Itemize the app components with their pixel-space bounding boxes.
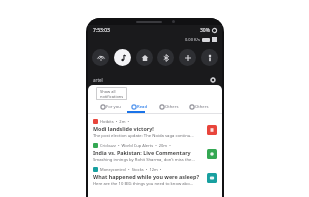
- button[interactable]: Wi-Fi: [92, 49, 109, 66]
- button[interactable]: Others: [189, 104, 210, 110]
- button[interactable]: Flashlight: [201, 49, 218, 66]
- staticText: Here are the 10 BIG things you need to k…: [93, 181, 194, 187]
- staticText: 0.00 K/s: [185, 37, 200, 42]
- staticText: artel: [93, 77, 103, 83]
- button[interactable]: For you: [100, 104, 122, 110]
- staticText: Show all: [100, 89, 116, 94]
- staticText: Others: [165, 104, 179, 110]
- button[interactable]: Hotbits • 2m •: [88, 117, 222, 141]
- staticText: Hotbits • 2m •: [100, 119, 129, 124]
- staticText: What happened while you were asleep?: [93, 173, 200, 180]
- staticText: 7:53:03: [93, 27, 110, 34]
- staticText: Others: [195, 104, 209, 110]
- staticText: Smashing innings by Rohit Sharma, don't …: [93, 157, 195, 163]
- button[interactable]: Home: [136, 49, 153, 66]
- staticText: Read: [137, 104, 148, 110]
- button[interactable]: Sound: [114, 49, 131, 66]
- staticText: The post election update: The Noida saga…: [93, 133, 194, 139]
- button[interactable]: Moneycontrol • Stocks • 12m •: [88, 165, 222, 189]
- staticText: 30%: [200, 27, 210, 34]
- button[interactable]: Cricbuzz • World Cup Alerts • 20m •: [88, 141, 222, 165]
- staticText: Modi landslide victory!: [93, 125, 154, 132]
- staticText: Cricbuzz • World Cup Alerts • 20m •: [100, 143, 171, 148]
- button[interactable]: Show all: [96, 87, 127, 100]
- button[interactable]: Read: [131, 104, 149, 110]
- button[interactable]: Bluetooth: [157, 49, 174, 66]
- button[interactable]: Settings: [209, 76, 217, 84]
- button[interactable]: Add: [179, 49, 196, 66]
- staticText: Moneycontrol • Stocks • 12m •: [100, 167, 162, 172]
- staticText: India vs. Pakistan: Live Commentary: [93, 149, 191, 156]
- staticText: For you: [106, 104, 121, 110]
- button[interactable]: Others: [159, 104, 180, 110]
- staticText: notifications: [100, 94, 124, 99]
